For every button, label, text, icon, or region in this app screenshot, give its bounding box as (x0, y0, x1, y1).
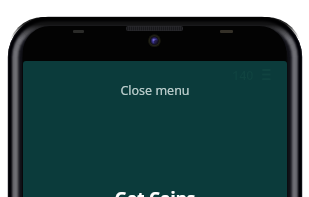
staticText: Get Coins (23, 187, 287, 197)
staticText: Close menu (23, 82, 287, 99)
button[interactable]: Close menu (23, 74, 287, 104)
button[interactable]: Get Coins (23, 179, 287, 197)
